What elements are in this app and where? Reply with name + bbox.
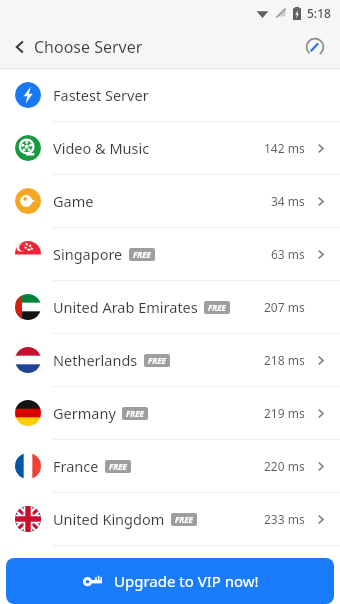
staticText: 5:18 — [307, 5, 331, 21]
staticText: Choose Server — [34, 36, 143, 58]
button[interactable]: Game — [0, 175, 340, 228]
staticText: 219 ms — [264, 405, 305, 421]
button[interactable]: Fastest Server — [0, 69, 340, 122]
button[interactable]: France — [0, 440, 340, 493]
button[interactable]: Speed test — [300, 32, 330, 62]
staticText: France — [53, 456, 99, 476]
staticText: Singapore — [53, 244, 123, 264]
staticText: Video & Music — [53, 138, 150, 158]
staticText: Germany — [53, 403, 116, 423]
button[interactable]: United Kingdom — [0, 493, 340, 546]
staticText: 207 ms — [264, 299, 305, 315]
button[interactable]: Upgrade to VIP now! — [6, 558, 334, 604]
button[interactable]: Germany — [0, 387, 340, 440]
staticText: 34 ms — [271, 193, 305, 209]
button[interactable]: Video & Music — [0, 122, 340, 175]
staticText: FREE — [109, 461, 127, 472]
staticText: Netherlands — [53, 350, 138, 370]
staticText: 142 ms — [264, 140, 305, 156]
staticText: FREE — [148, 355, 166, 366]
staticText: FREE — [175, 514, 193, 525]
staticText: 218 ms — [264, 352, 305, 368]
button[interactable]: Singapore — [0, 228, 340, 281]
staticText: Game — [53, 191, 94, 211]
staticText: United Arab Emirates — [53, 297, 198, 317]
staticText: FREE — [133, 249, 151, 260]
button[interactable]: Choose Server — [0, 28, 151, 66]
staticText: FREE — [208, 302, 226, 313]
staticText: 233 ms — [264, 511, 305, 527]
staticText: Fastest Server — [53, 85, 149, 105]
button[interactable]: Netherlands — [0, 334, 340, 387]
staticText: Upgrade to VIP now! — [114, 571, 259, 591]
staticText: 220 ms — [264, 458, 305, 474]
staticText: FREE — [126, 408, 144, 419]
button[interactable]: United Arab Emirates — [0, 281, 340, 334]
staticText: 63 ms — [271, 246, 305, 262]
staticText: United Kingdom — [53, 509, 165, 529]
